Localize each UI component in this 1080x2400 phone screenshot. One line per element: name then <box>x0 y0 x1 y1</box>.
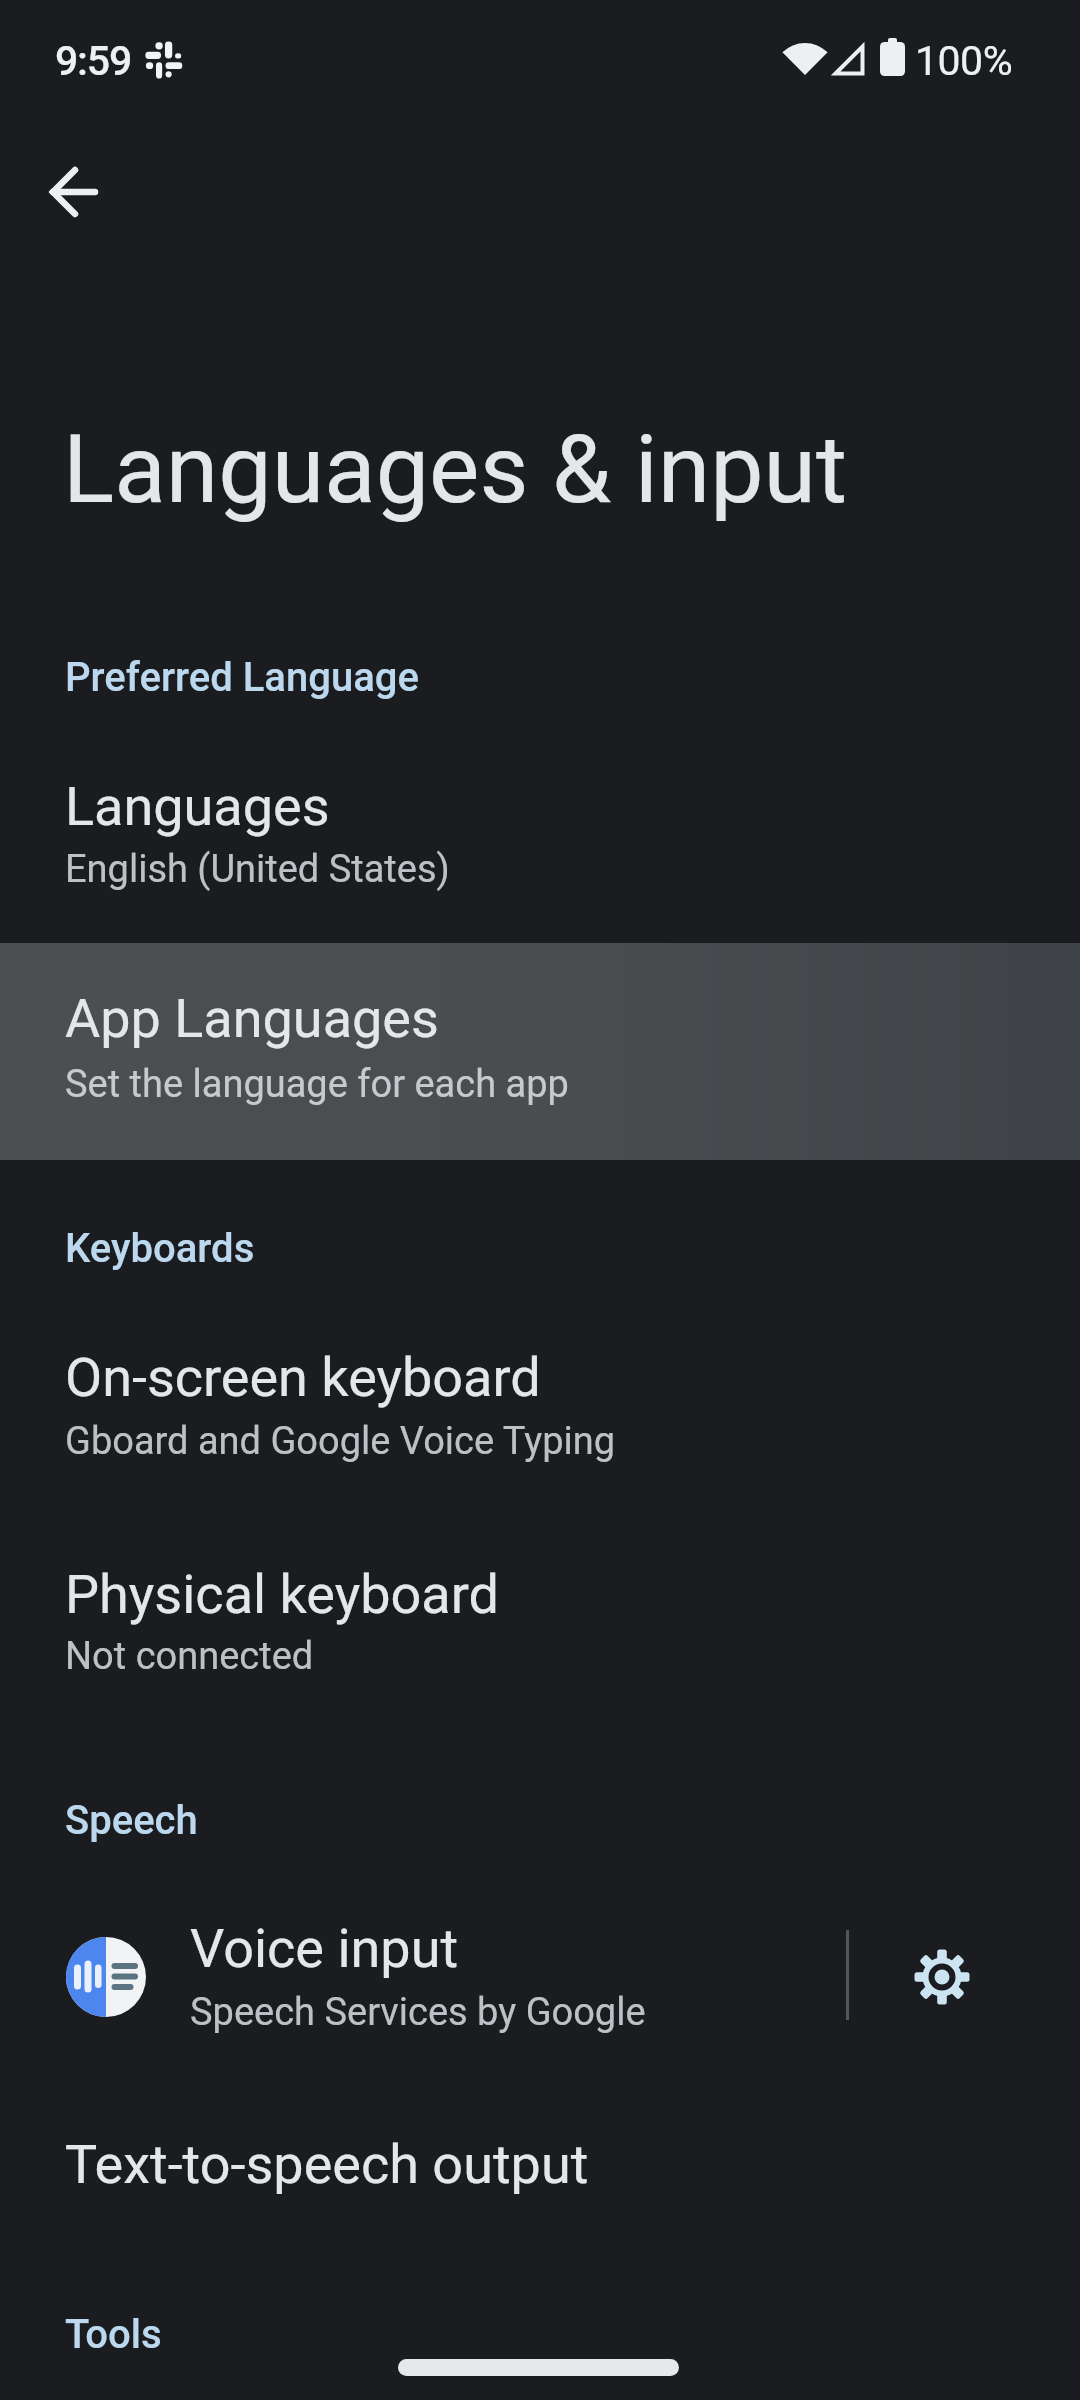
button[interactable] <box>886 1921 998 2033</box>
button[interactable]: Text-to-speech output <box>0 2089 1080 2239</box>
staticText: Voice input <box>190 1917 459 1980</box>
staticText: Languages & input <box>63 414 848 525</box>
staticText: Preferred Language <box>65 654 419 701</box>
staticText: Tools <box>65 2311 162 2358</box>
staticText: 9:59 <box>55 37 131 85</box>
staticText: Physical keyboard <box>65 1563 499 1626</box>
button[interactable]: Languages <box>0 731 1080 943</box>
staticText: Gboard and Google Voice Typing <box>65 1419 616 1464</box>
staticText: English (United States) <box>65 847 450 892</box>
staticText: App Languages <box>65 987 439 1050</box>
staticText: On-screen keyboard <box>65 1346 541 1409</box>
button[interactable]: App Languages <box>0 943 1080 1160</box>
staticText: Speech <box>65 1797 198 1844</box>
button[interactable] <box>28 146 120 238</box>
button[interactable]: Voice input <box>0 1873 1080 2091</box>
staticText: Set the language for each app <box>65 1062 569 1107</box>
staticText: Not connected <box>65 1634 314 1679</box>
staticText: 100% <box>915 37 1013 85</box>
button[interactable]: Physical keyboard <box>0 1519 1080 1731</box>
staticText: Speech Services by Google <box>190 1990 646 2035</box>
staticText: Languages <box>65 775 330 838</box>
staticText: Text-to-speech output <box>65 2133 589 2196</box>
button[interactable]: On-screen keyboard <box>0 1302 1080 1514</box>
staticText: Keyboards <box>65 1225 255 1272</box>
